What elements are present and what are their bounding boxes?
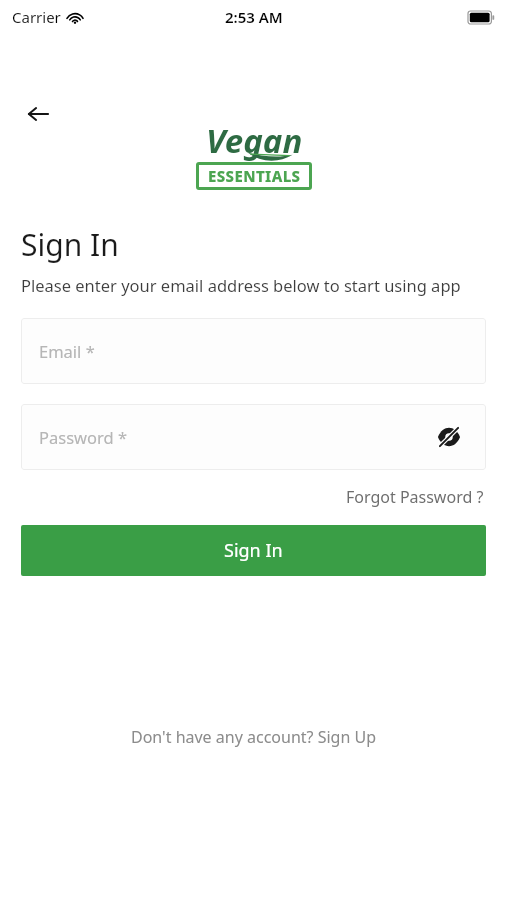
button[interactable]: Password * [21,404,486,470]
button[interactable]: Show password [434,422,464,452]
staticText: Sign In [21,224,119,265]
button[interactable]: Sign In [21,525,486,576]
staticText: Sign In [224,538,283,563]
button[interactable]: Forgot Password ? [344,483,486,511]
staticText: Password * [39,426,128,448]
staticText: Carrier [12,7,61,27]
staticText: Don't have any account? Sign Up [131,726,376,748]
staticText: Email * [39,340,95,362]
staticText: Vegan [206,118,303,163]
staticText: Please enter your email address below to… [21,274,461,296]
staticText: 2:53 AM [225,7,283,27]
button[interactable]: Back [18,94,58,134]
staticText: Forgot Password ? [346,486,484,508]
staticText: ESSENTIALS [208,166,301,186]
button[interactable]: Don't have any account? Sign Up [125,722,382,752]
button[interactable]: Email * [21,318,486,384]
